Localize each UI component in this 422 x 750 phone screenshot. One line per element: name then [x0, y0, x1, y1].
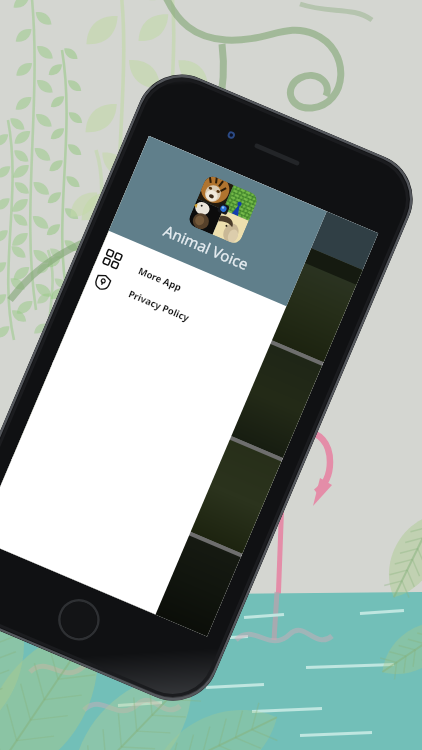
button[interactable]: More apps: [94, 242, 282, 340]
staticText: Animal Voice: [180, 164, 266, 215]
other: More apps: [103, 249, 122, 269]
button[interactable]: Sheeps: [94, 173, 363, 362]
staticText: Sheeps: [122, 212, 194, 263]
button[interactable]: Lizards: [13, 364, 281, 554]
button[interactable]: Privacy policy: [84, 265, 272, 363]
other: Privacy policy: [93, 272, 113, 292]
staticText: More App: [136, 264, 184, 294]
button[interactable]: Parrots: [54, 269, 322, 458]
staticText: Parrots: [81, 308, 156, 359]
staticText: Animal Voice: [161, 220, 252, 274]
staticText: Privacy Policy: [126, 287, 191, 325]
button[interactable]: Birds: [0, 460, 241, 636]
button[interactable]: App icon: [187, 174, 259, 246]
